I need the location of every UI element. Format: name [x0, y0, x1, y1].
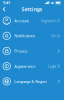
staticText: Account [14, 18, 28, 23]
staticText: On [51, 33, 56, 38]
staticText: Light [48, 63, 56, 69]
button[interactable]: Account [1, 13, 63, 28]
staticText: Privacy [14, 48, 27, 54]
button[interactable]: Back [1, 6, 7, 13]
button[interactable]: Appearance [1, 59, 63, 74]
button[interactable]: Privacy [1, 43, 63, 59]
staticText: Notifications [14, 33, 35, 38]
staticText: Settings [21, 6, 42, 13]
staticText: Signed in [41, 18, 56, 23]
staticText: Appearance [14, 63, 35, 69]
button[interactable]: Notifications [1, 28, 63, 43]
staticText: Language & Region [14, 79, 46, 84]
button[interactable]: Language & Region [1, 74, 63, 89]
staticText: 9:41 [3, 0, 10, 5]
